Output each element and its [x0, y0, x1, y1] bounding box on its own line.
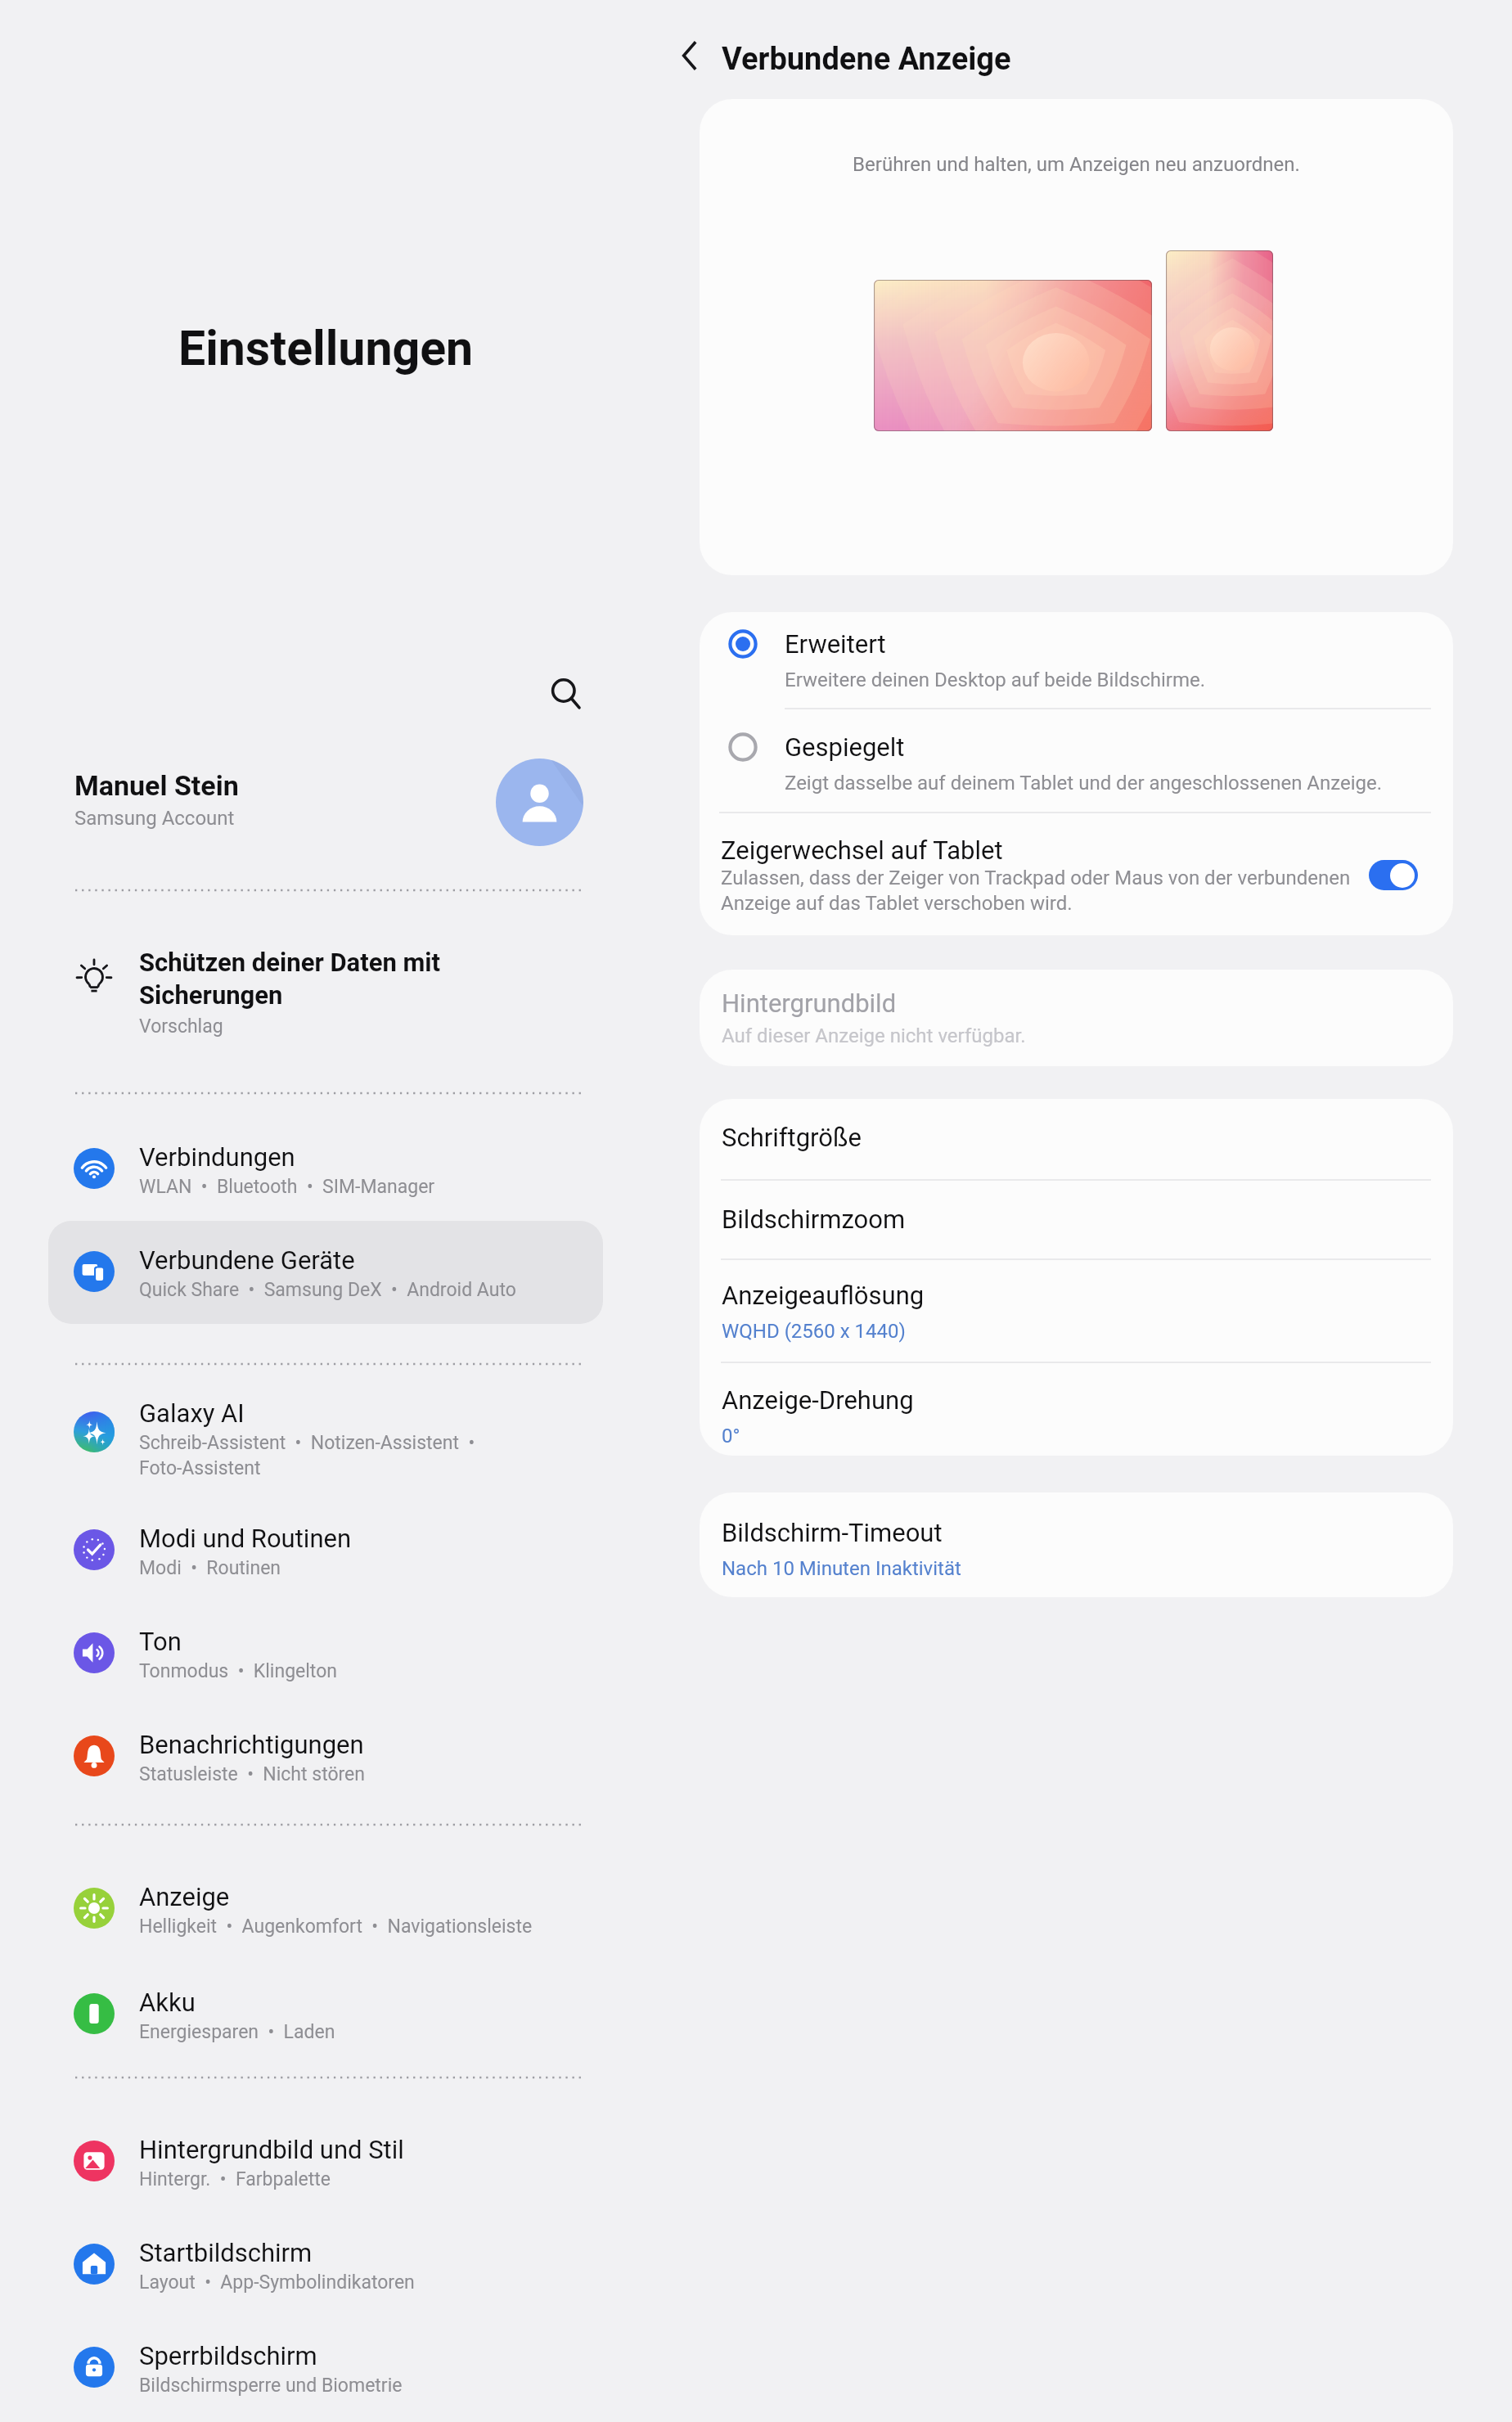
staticText: Akku [139, 1988, 196, 2017]
staticText: Schreib-Assistent • Notizen-Assistent • [139, 1432, 475, 1454]
staticText: Nach 10 Minuten Inaktivität [722, 1557, 961, 1580]
staticText: Gespiegelt [785, 732, 905, 762]
staticText: Helligkeit • Augenkomfort • Navigationsl… [139, 1916, 533, 1938]
button[interactable]: Ton [48, 1602, 603, 1705]
staticText: Zulassen, dass der Zeiger von Trackpad o… [721, 867, 1351, 889]
staticText: Vorschlag [139, 1015, 223, 1038]
button[interactable]: Verbindungen [48, 1118, 603, 1221]
staticText: Zeigt dasselbe auf deinem Tablet und der… [785, 772, 1383, 795]
button[interactable]: Sperrbildschirm [48, 2316, 603, 2420]
staticText: Erweitert [785, 629, 886, 659]
staticText: Hintergr. • Farbpalette [139, 2168, 331, 2190]
staticText: Erweitere deinen Desktop auf beide Bilds… [785, 669, 1206, 691]
staticText: Sperrbildschirm [139, 2341, 317, 2370]
button[interactable]: Anzeigeauflösung [700, 1259, 1453, 1362]
staticText: Samsung Account [74, 807, 235, 830]
staticText: Bildschirmsperre und Biometrie [139, 2375, 403, 2397]
button[interactable]: Erweitert [700, 612, 1453, 708]
staticText: Startbildschirm [139, 2238, 313, 2267]
staticText: Berühren und halten, um Anzeigen neu anz… [700, 153, 1453, 176]
staticText: Manuel Stein [74, 769, 239, 802]
staticText: Verbundene Anzeige [722, 41, 1011, 78]
button[interactable]: Benachrichtigungen [48, 1705, 603, 1808]
staticText: WQHD (2560 x 1440) [722, 1320, 906, 1343]
staticText: Verbindungen [139, 1142, 295, 1172]
staticText: Statusleiste • Nicht stören [139, 1763, 366, 1785]
staticText: Energiesparen • Laden [139, 2021, 335, 2043]
button[interactable]: Zeigerwechsel auf Tablet [700, 813, 1453, 935]
staticText: Anzeigeauflösung [722, 1281, 925, 1310]
staticText: 0° [722, 1425, 740, 1447]
button[interactable]: Bildschirmzoom [700, 1180, 1453, 1258]
staticText: Bildschirmzoom [722, 1204, 906, 1234]
staticText: Hintergrundbild und Stil [139, 2135, 404, 2164]
staticText: Tonmodus • Klingelton [139, 1660, 337, 1682]
staticText: Bildschirm-Timeout [722, 1518, 943, 1547]
button[interactable]: Schriftgröße [700, 1099, 1453, 1179]
button[interactable]: Anzeige [48, 1857, 603, 1961]
staticText: Verbundene Geräte [139, 1245, 355, 1275]
staticText: Hintergrundbild [722, 988, 897, 1018]
button[interactable]: Manuel Stein [48, 753, 603, 854]
button[interactable]: Akku [48, 1963, 603, 2066]
staticText: Sicherungen [139, 980, 283, 1010]
button[interactable]: Modi und Routinen [48, 1499, 603, 1602]
staticText: Foto-Assistent [139, 1457, 261, 1479]
button[interactable]: Zurück [661, 26, 720, 85]
staticText: Auf dieser Anzeige nicht verfügbar. [722, 1024, 1026, 1047]
staticText: Benachrichtigungen [139, 1730, 364, 1759]
staticText: Modi • Routinen [139, 1557, 281, 1579]
staticText: Modi und Routinen [139, 1524, 352, 1553]
staticText: Zeigerwechsel auf Tablet [721, 835, 1003, 865]
staticText: Einstellungen [178, 320, 474, 376]
button[interactable]: Verbundene Geräte [48, 1221, 603, 1324]
staticText: Anzeige-Drehung [722, 1385, 914, 1415]
staticText: Galaxy AI [139, 1398, 245, 1428]
button[interactable]: Suchen [535, 663, 597, 725]
staticText: Ton [139, 1627, 182, 1656]
staticText: Anzeige [139, 1882, 230, 1911]
button[interactable]: Gespiegelt [700, 709, 1453, 812]
staticText: Anzeige auf das Tablet verschoben wird. [721, 892, 1073, 915]
staticText: Quick Share • Samsung DeX • Android Auto [139, 1279, 516, 1301]
button[interactable]: Startbildschirm [48, 2213, 603, 2316]
button[interactable]: Schützen deiner Daten mit [48, 923, 603, 1026]
button[interactable]: Anzeige-Drehung [700, 1362, 1453, 1456]
button[interactable]: Zeigerwechsel auf Tablet umschalten [1369, 860, 1418, 890]
button[interactable]: Hintergrundbild und Stil [48, 2110, 603, 2213]
button[interactable]: Bildschirm-Timeout [700, 1492, 1453, 1597]
staticText: WLAN • Bluetooth • SIM-Manager [139, 1176, 435, 1198]
staticText: Schriftgröße [722, 1123, 862, 1152]
staticText: Layout • App-Symbolindikatoren [139, 2271, 415, 2294]
button[interactable]: Galaxy AI [48, 1374, 603, 1477]
staticText: Schützen deiner Daten mit [139, 948, 441, 977]
